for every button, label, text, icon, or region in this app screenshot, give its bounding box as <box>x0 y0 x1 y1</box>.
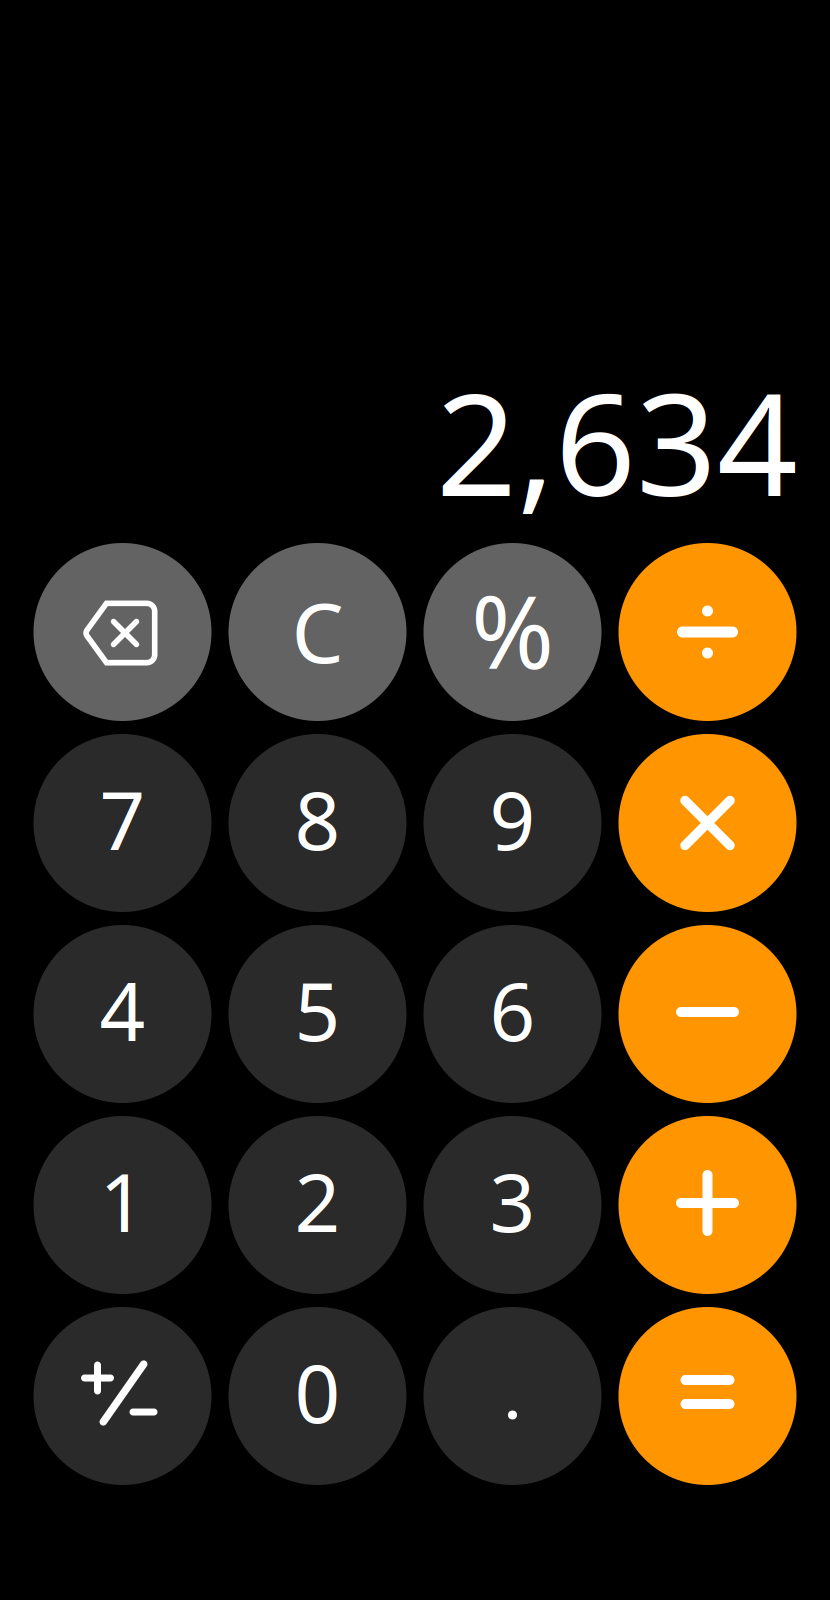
staticText: 8 <box>294 766 340 872</box>
button[interactable]: 1 <box>33 1116 211 1294</box>
button[interactable]: Plus Minus <box>33 1307 211 1485</box>
button[interactable]: % <box>423 543 601 721</box>
button[interactable]: 3 <box>423 1116 601 1294</box>
staticText: 9 <box>489 766 535 872</box>
staticText: 6 <box>489 957 535 1063</box>
button[interactable]: 5 <box>228 925 406 1103</box>
staticText: 4 <box>99 957 145 1063</box>
button[interactable]: Subtract <box>618 925 796 1103</box>
staticText: 2 <box>294 1148 340 1254</box>
button[interactable]: Divide <box>618 543 796 721</box>
button[interactable]: 8 <box>228 734 406 912</box>
button[interactable]: C <box>228 543 406 721</box>
staticText: 1 <box>99 1148 145 1254</box>
staticText: C <box>291 576 343 686</box>
button[interactable]: . <box>423 1307 601 1485</box>
staticText: 3 <box>489 1148 535 1254</box>
staticText: 7 <box>99 766 145 872</box>
button[interactable]: 0 <box>228 1307 406 1485</box>
button[interactable]: Multiply <box>618 734 796 912</box>
button[interactable]: 2 <box>228 1116 406 1294</box>
button[interactable]: Add <box>618 1116 796 1294</box>
button[interactable]: 6 <box>423 925 601 1103</box>
staticText: 0 <box>294 1339 340 1445</box>
button[interactable]: 4 <box>33 925 211 1103</box>
button[interactable]: Equals <box>618 1307 796 1485</box>
staticText: 5 <box>294 957 340 1063</box>
button[interactable]: 9 <box>423 734 601 912</box>
button[interactable]: 7 <box>33 734 211 912</box>
button[interactable]: Delete <box>33 543 211 721</box>
staticText: 2,634 <box>436 347 798 535</box>
staticText: % <box>471 564 554 696</box>
